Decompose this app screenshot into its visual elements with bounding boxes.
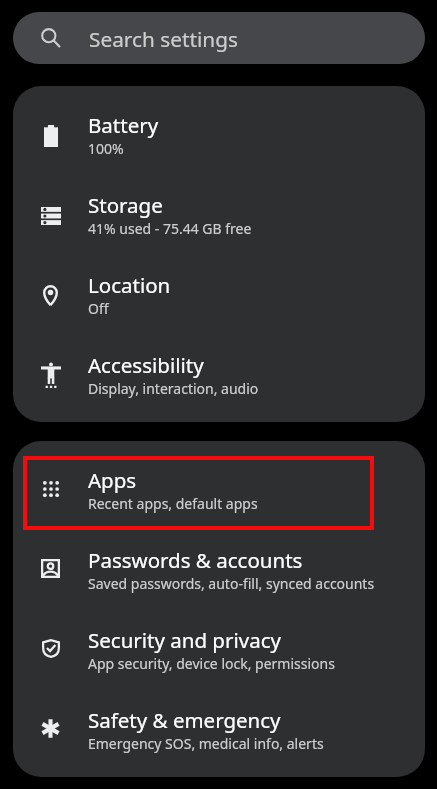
button[interactable]: Accessibility <box>13 334 425 414</box>
button[interactable]: Apps <box>13 449 425 529</box>
other: Battery <box>44 125 58 147</box>
staticText: App security, device lock, permissions <box>88 654 335 673</box>
staticText: 100% <box>88 139 124 158</box>
staticText: Accessibility <box>88 351 204 379</box>
other: Apps <box>43 481 59 497</box>
other: Security and privacy <box>42 639 60 658</box>
other: Storage <box>41 207 61 225</box>
button[interactable]: Passwords and accounts <box>13 529 425 609</box>
button[interactable]: Safety and emergency <box>13 689 425 769</box>
staticText: Emergency SOS, medical info, alerts <box>88 734 324 753</box>
staticText: Storage <box>88 191 163 219</box>
staticText: Recent apps, default apps <box>88 494 258 513</box>
staticText: Battery <box>88 111 159 139</box>
button[interactable]: Storage <box>13 174 425 254</box>
other: Accessibility <box>41 362 61 388</box>
button[interactable]: Battery <box>13 94 425 174</box>
other: Safety and emergency <box>41 719 60 738</box>
button[interactable]: Search settings <box>13 12 425 64</box>
staticText: Off <box>88 299 109 318</box>
staticText: Search settings <box>89 25 238 53</box>
button[interactable]: Security and privacy <box>13 609 425 689</box>
button[interactable]: Location <box>13 254 425 334</box>
staticText: Apps <box>88 466 137 494</box>
other: Location <box>43 285 58 306</box>
staticText: 41% used - 75.44 GB free <box>88 219 252 238</box>
staticText: Location <box>88 271 171 299</box>
other: Passwords and accounts <box>41 559 60 578</box>
staticText: Safety & emergency <box>88 706 281 734</box>
staticText: Display, interaction, audio <box>88 379 259 398</box>
staticText: Passwords & accounts <box>88 546 303 574</box>
staticText: Saved passwords, auto-fill, synced accou… <box>88 574 375 593</box>
staticText: Security and privacy <box>88 626 281 654</box>
